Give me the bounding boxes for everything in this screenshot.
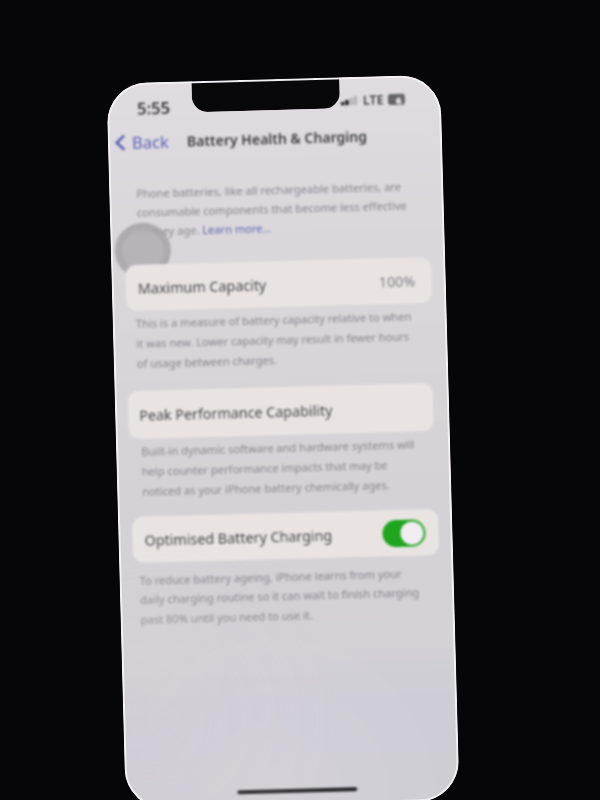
staticText: This is a measure of battery capacity re… [136, 308, 413, 371]
button[interactable]: Optimised Battery Charging [132, 509, 439, 563]
staticText: Peak Performance Capability [139, 401, 333, 425]
staticText: Battery Health & Charging [187, 127, 367, 150]
staticText: 100% [378, 271, 416, 291]
staticText: Back [132, 130, 169, 153]
button[interactable]: Back [111, 127, 173, 156]
button[interactable]: Optimised Battery Charging [382, 519, 426, 547]
staticText: Maximum Capacity [138, 275, 267, 298]
button[interactable]: Maximum Capacity [125, 257, 432, 311]
staticText: 6 [396, 94, 402, 105]
staticText: Optimised Battery Charging [144, 526, 333, 550]
staticText: LTE [363, 91, 384, 109]
staticText: Phone batteries, like all rechargeable b… [136, 179, 408, 239]
staticText: To reduce battery ageing, iPhone learns … [139, 565, 421, 628]
button[interactable]: Peak Performance Capability [128, 383, 434, 439]
staticText: Built-in dynamic software and hardware s… [141, 436, 416, 499]
staticText: 5:55 [137, 96, 171, 120]
